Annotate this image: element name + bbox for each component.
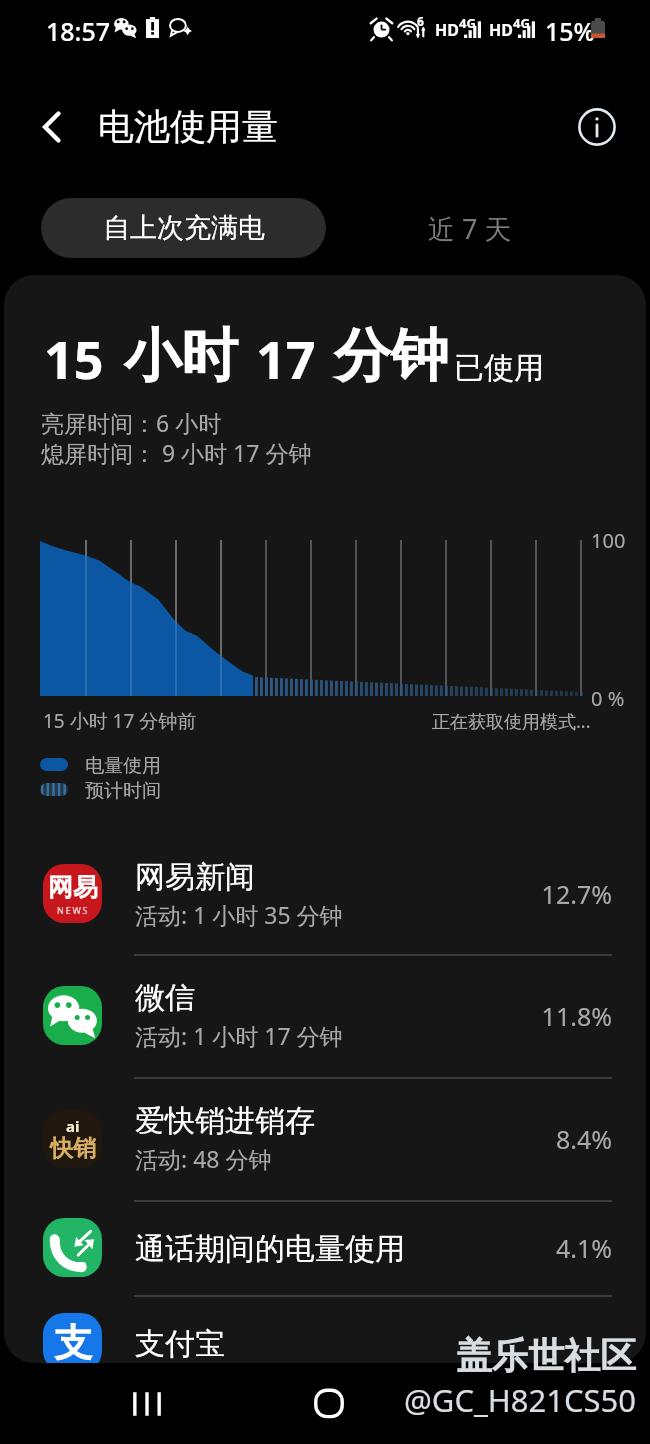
staticText: 正在获取使用模式...	[432, 709, 591, 734]
staticText: 4.1%	[555, 1231, 612, 1265]
staticText: 0 %	[591, 685, 625, 712]
staticText: 预计时间	[85, 779, 161, 803]
staticText: 电量使用	[85, 754, 161, 778]
staticText: 12.7%	[541, 877, 612, 911]
staticText: 6	[417, 13, 424, 29]
button[interactable]: 网易	[4, 833, 646, 954]
staticText: 支	[54, 1319, 92, 1363]
staticText: 11.8%	[541, 999, 612, 1033]
button[interactable]: Recent apps	[119, 1376, 175, 1432]
staticText: 15%	[545, 14, 595, 48]
staticText: 亮屏时间：6 小时	[41, 407, 222, 438]
staticText: 盖乐世社区	[456, 1333, 636, 1378]
staticText: 8.4%	[555, 1122, 612, 1156]
staticText: 快销	[50, 1134, 96, 1163]
staticText: 小时	[124, 320, 238, 392]
staticText: 4G	[459, 14, 476, 32]
button[interactable]: Information	[575, 105, 619, 149]
button[interactable]: Home	[301, 1376, 357, 1432]
staticText: 网易新闻	[135, 858, 255, 896]
staticText: 活动: 48 分钟	[135, 1143, 272, 1174]
staticText: NEWS	[57, 904, 90, 916]
staticText: HD	[435, 19, 459, 41]
staticText: 已使用	[454, 349, 544, 387]
staticText: 自上次充满电	[103, 211, 265, 245]
button[interactable]: 微信	[4, 954, 646, 1077]
button[interactable]: 近 7 天	[390, 198, 550, 258]
staticText: HD	[489, 19, 513, 41]
staticText: 18:57	[46, 14, 111, 48]
staticText: 支付宝	[135, 1325, 225, 1363]
button[interactable]: ai	[4, 1077, 646, 1200]
staticText: 17	[256, 323, 316, 394]
staticText: ai	[66, 1116, 80, 1136]
staticText: 近 7 天	[428, 210, 512, 247]
staticText: 15	[44, 323, 104, 394]
button[interactable]: Back	[22, 103, 70, 151]
staticText: 微信	[135, 979, 195, 1017]
button[interactable]: 通话期间的电量使用	[4, 1200, 646, 1295]
staticText: 爱快销进销存	[135, 1102, 315, 1140]
staticText: 分钟	[334, 320, 448, 392]
staticText: 熄屏时间： 9 小时 17 分钟	[41, 437, 312, 468]
staticText: 网易	[48, 872, 98, 903]
button[interactable]: 支	[4, 1295, 646, 1363]
staticText: @GC_H821CS50	[404, 1379, 637, 1421]
staticText: 活动: 1 小时 35 分钟	[135, 899, 343, 930]
staticText: 通话期间的电量使用	[135, 1230, 405, 1268]
staticText: 活动: 1 小时 17 分钟	[135, 1020, 343, 1051]
staticText: 15 小时 17 分钟前	[43, 708, 197, 734]
staticText: 电池使用量	[98, 104, 278, 149]
button[interactable]: Back	[477, 1376, 533, 1432]
staticText: 4G	[513, 14, 530, 32]
button[interactable]: 自上次充满电	[41, 198, 326, 258]
staticText: 100	[591, 527, 626, 554]
